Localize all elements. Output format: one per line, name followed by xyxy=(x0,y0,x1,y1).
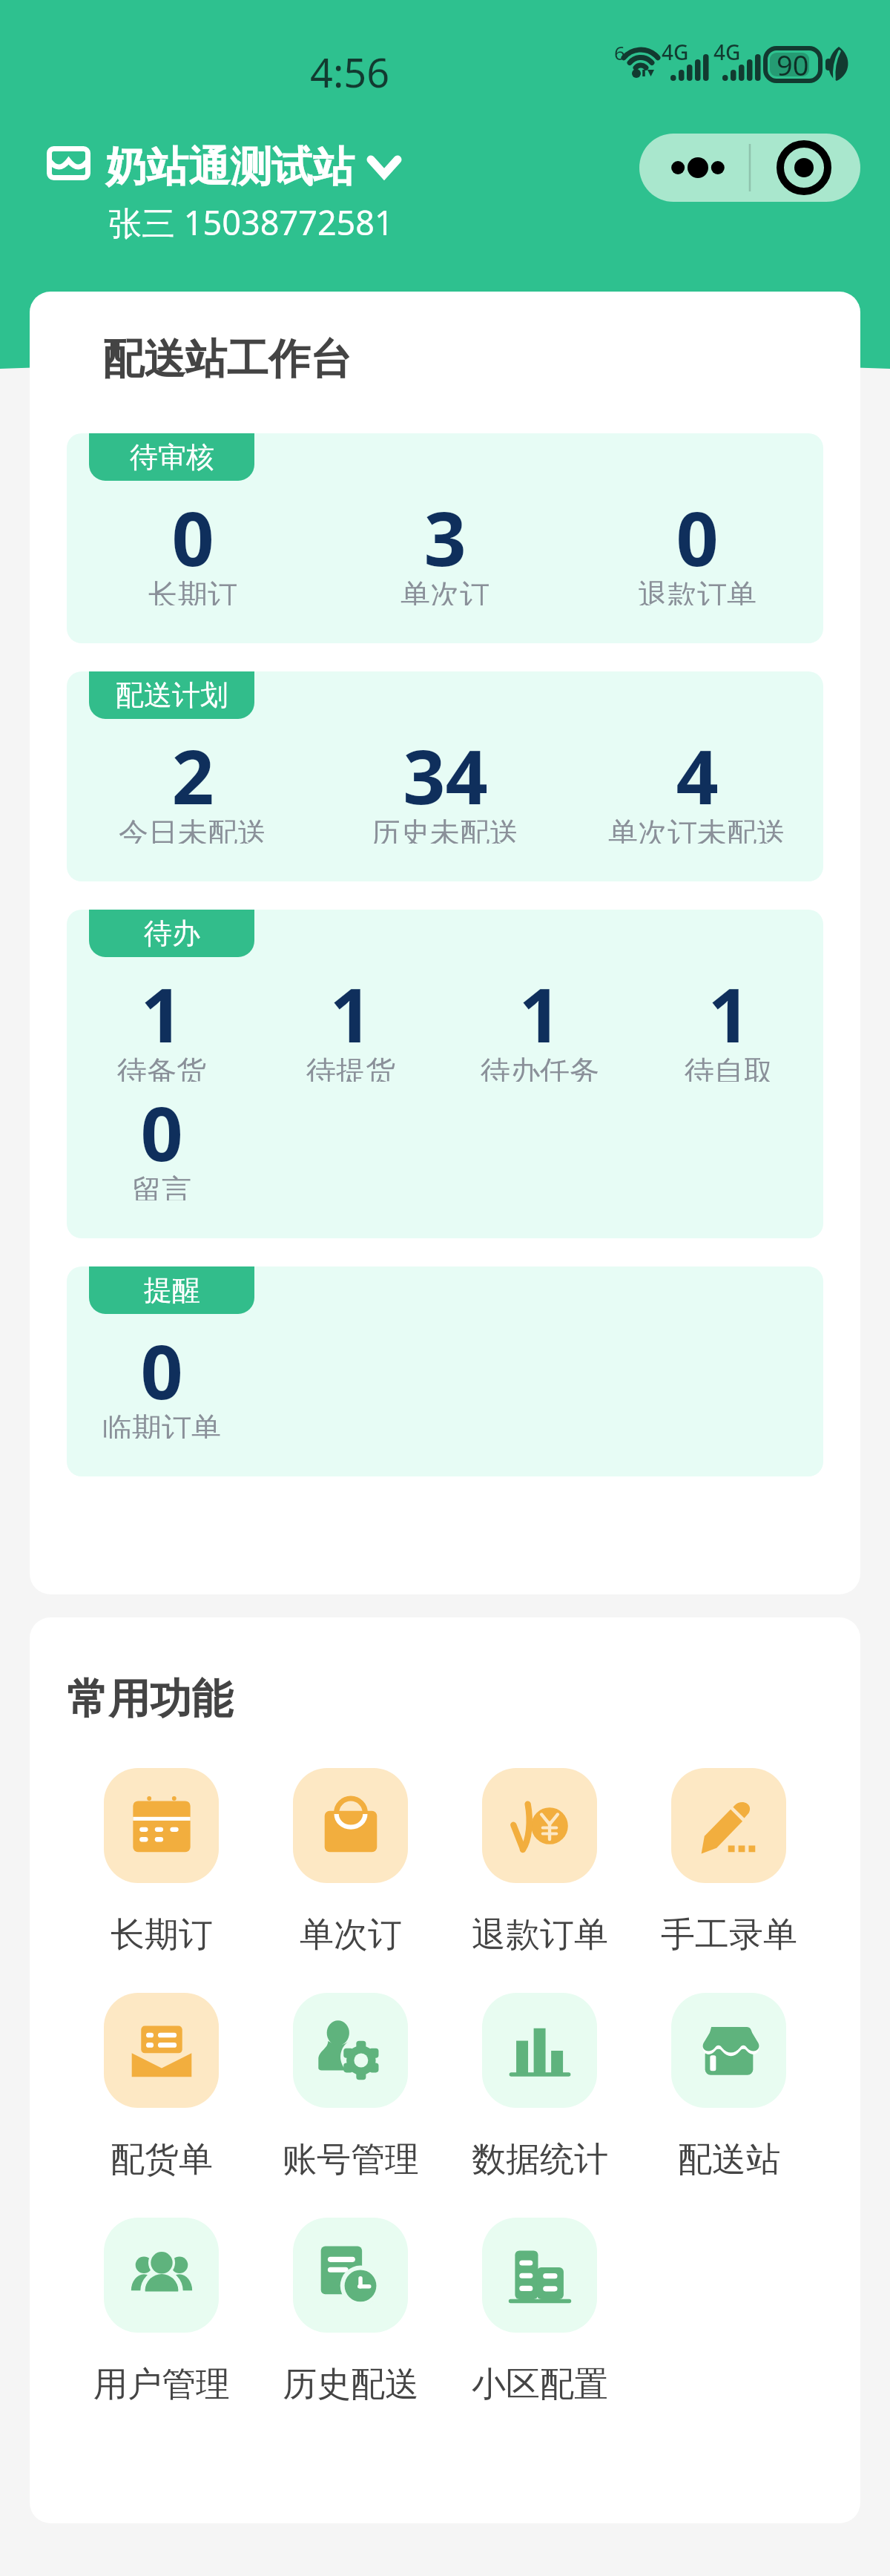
staticText: 0 xyxy=(171,487,214,576)
staticText: 数据统计 xyxy=(472,2138,608,2180)
button[interactable]: 34 xyxy=(319,725,571,844)
button[interactable]: More options xyxy=(639,134,860,202)
staticText: 用户管理 xyxy=(93,2363,230,2405)
staticText: 待办 xyxy=(144,916,200,951)
staticText: 34 xyxy=(403,725,488,815)
button[interactable]: 0 xyxy=(67,1320,256,1439)
staticText: 单次订 xyxy=(300,1913,402,1955)
staticText: 留言 xyxy=(132,1172,191,1200)
staticText: 提醒 xyxy=(144,1272,200,1308)
button[interactable]: 2 xyxy=(67,725,319,844)
staticText: 单次订未配送 xyxy=(608,815,786,844)
staticText: 待提货 xyxy=(306,1053,395,1082)
button[interactable]: 1 xyxy=(634,963,823,1082)
staticText: 小区配置 xyxy=(472,2363,608,2405)
button[interactable]: 待办 xyxy=(89,910,254,957)
button[interactable]: 单次订 xyxy=(256,1768,445,1993)
staticText: 单次订 xyxy=(400,576,489,605)
staticText: 4G xyxy=(662,38,689,66)
staticText: 待备货 xyxy=(117,1053,206,1082)
staticText: 张三 15038772581 xyxy=(108,200,394,245)
button[interactable]: 0 xyxy=(571,487,823,605)
staticText: 6 xyxy=(614,39,625,65)
staticText: 长期订 xyxy=(111,1913,213,1955)
button[interactable]: 长期订 xyxy=(67,1768,256,1993)
staticText: 退款订单 xyxy=(638,576,756,605)
staticText: 待审核 xyxy=(130,439,214,475)
staticText: 历史未配送 xyxy=(371,815,519,844)
button[interactable]: 提醒 xyxy=(89,1266,254,1314)
staticText: 待自取 xyxy=(685,1053,774,1082)
staticText: 4 xyxy=(676,725,719,815)
staticText: 2 xyxy=(171,725,214,815)
button[interactable]: 4 xyxy=(571,725,823,844)
button[interactable]: 手工录单 xyxy=(634,1768,823,1993)
button[interactable]: 1 xyxy=(256,963,445,1082)
staticText: 0 xyxy=(140,1082,183,1172)
staticText: 90 xyxy=(777,45,809,84)
staticText: 配送计划 xyxy=(116,677,228,713)
staticText: 手工录单 xyxy=(661,1913,797,1955)
button[interactable]: 用户管理 xyxy=(67,2218,256,2442)
staticText: 长期订 xyxy=(148,576,237,605)
button[interactable]: 1 xyxy=(67,963,256,1082)
button[interactable]: 数据统计 xyxy=(445,1993,634,2218)
button[interactable]: 1 xyxy=(445,963,634,1082)
staticText: 3 xyxy=(423,487,467,576)
staticText: 配货单 xyxy=(111,2138,213,2180)
staticText: 1 xyxy=(518,963,561,1053)
staticText: 临期订单 xyxy=(102,1410,221,1439)
button[interactable]: 配送站 xyxy=(634,1993,823,2218)
staticText: 今日未配送 xyxy=(119,815,267,844)
button[interactable]: 配送计划 xyxy=(89,671,254,719)
staticText: 常用功能 xyxy=(67,1673,233,1726)
staticText: 1 xyxy=(329,963,372,1053)
button[interactable]: 3 xyxy=(319,487,571,605)
staticText: 账号管理 xyxy=(283,2138,419,2180)
button[interactable]: 0 xyxy=(67,1082,256,1200)
staticText: 配送站 xyxy=(678,2138,780,2180)
button[interactable]: 配货单 xyxy=(67,1993,256,2218)
button[interactable]: 待审核 xyxy=(89,433,254,481)
button[interactable]: 历史配送 xyxy=(256,2218,445,2442)
staticText: 配送站工作台 xyxy=(102,333,352,386)
staticText: 待办任务 xyxy=(481,1053,599,1082)
staticText: 4G xyxy=(713,38,741,66)
staticText: 4:56 xyxy=(310,45,390,99)
button[interactable]: 账号管理 xyxy=(256,1993,445,2218)
button[interactable]: 0 xyxy=(67,487,319,605)
button[interactable]: 小区配置 xyxy=(445,2218,634,2442)
staticText: 1 xyxy=(140,963,183,1053)
staticText: 0 xyxy=(676,487,719,576)
staticText: 1 xyxy=(708,963,751,1053)
staticText: 历史配送 xyxy=(283,2363,419,2405)
button[interactable]: 退款订单 xyxy=(445,1768,634,1993)
staticText: 0 xyxy=(140,1320,183,1410)
staticText: 奶站通测试站 xyxy=(105,141,355,194)
staticText: 退款订单 xyxy=(472,1913,608,1955)
